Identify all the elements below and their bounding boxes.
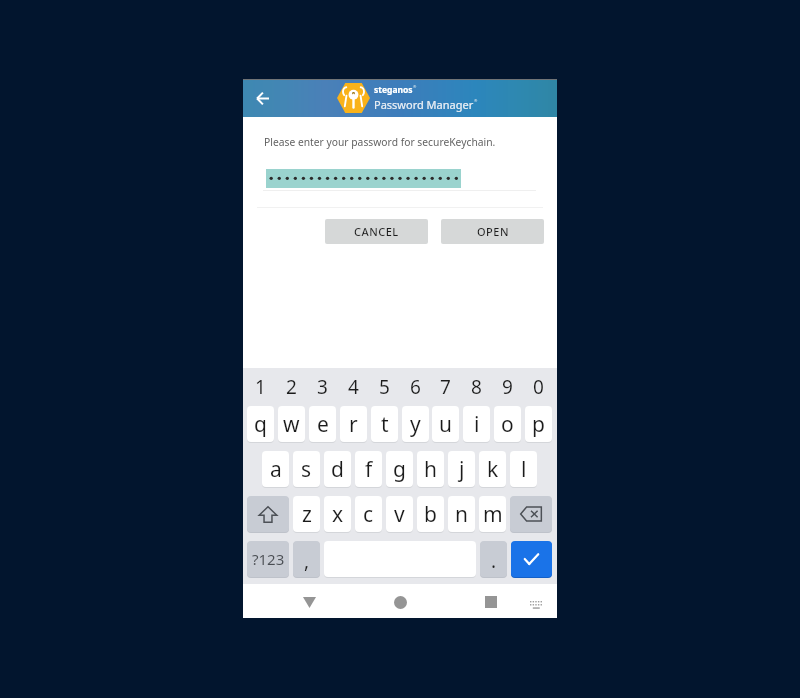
staticText: a: [270, 455, 282, 484]
staticText: m: [483, 500, 503, 529]
staticText: k: [487, 455, 499, 484]
button[interactable]: t: [371, 406, 398, 442]
staticText: OPEN: [477, 224, 509, 239]
staticText: ®: [413, 84, 417, 89]
staticText: j: [459, 455, 465, 484]
staticText: 9: [502, 374, 513, 400]
button[interactable]: c: [355, 496, 382, 532]
staticText: h: [424, 455, 437, 484]
button[interactable]: h: [417, 451, 444, 487]
staticText: c: [363, 500, 374, 529]
button[interactable]: Switch keyboard: [518, 588, 554, 622]
button[interactable]: l: [510, 451, 537, 487]
button[interactable]: Recents: [471, 585, 511, 619]
staticText: ,: [304, 548, 310, 574]
staticText: t: [381, 410, 389, 439]
button[interactable]: Enter: [511, 541, 552, 577]
staticText: Please enter your password for secureKey…: [264, 135, 496, 149]
staticText: q: [254, 410, 267, 439]
button[interactable]: r: [340, 406, 367, 442]
button[interactable]: 7: [432, 372, 459, 402]
button[interactable]: q: [247, 406, 274, 442]
staticText: i: [474, 410, 480, 439]
staticText: g: [393, 455, 406, 484]
button[interactable]: p: [525, 406, 552, 442]
button[interactable]: u: [432, 406, 459, 442]
button[interactable]: Backspace: [510, 496, 552, 532]
button[interactable]: x: [324, 496, 351, 532]
staticText: 2: [286, 374, 297, 400]
button[interactable]: 9: [494, 372, 521, 402]
button[interactable]: 3: [309, 372, 336, 402]
button[interactable]: o: [494, 406, 521, 442]
button[interactable]: Back: [289, 585, 329, 619]
staticText: 3: [317, 374, 328, 400]
staticText: d: [331, 455, 344, 484]
button[interactable]: b: [417, 496, 444, 532]
button[interactable]: d: [324, 451, 351, 487]
staticText: x: [332, 500, 344, 529]
staticText: y: [410, 410, 421, 439]
button[interactable]: ,: [293, 541, 320, 577]
staticText: .: [491, 548, 497, 574]
staticText: 6: [410, 374, 421, 400]
button[interactable]: OPEN: [441, 219, 544, 244]
button[interactable]: i: [463, 406, 490, 442]
button[interactable]: f: [355, 451, 382, 487]
staticText: ®: [474, 98, 478, 103]
button[interactable]: m: [479, 496, 506, 532]
staticText: 4: [348, 374, 359, 400]
staticText: 8: [471, 374, 482, 400]
staticText: e: [317, 410, 329, 439]
button[interactable]: ?123: [247, 541, 289, 577]
staticText: f: [365, 455, 373, 484]
button[interactable]: k: [479, 451, 506, 487]
button[interactable]: .: [480, 541, 507, 577]
staticText: u: [439, 410, 452, 439]
staticText: l: [521, 455, 527, 484]
staticText: 5: [379, 374, 390, 400]
button[interactable]: 5: [371, 372, 398, 402]
staticText: 1: [255, 374, 266, 400]
button[interactable]: w: [278, 406, 305, 442]
staticText: steganos: [374, 84, 413, 96]
button[interactable]: j: [448, 451, 475, 487]
staticText: 7: [440, 374, 451, 400]
button[interactable]: e: [309, 406, 336, 442]
button[interactable]: g: [386, 451, 413, 487]
button[interactable]: Shift: [247, 496, 289, 532]
staticText: s: [301, 455, 312, 484]
button[interactable]: 0: [525, 372, 552, 402]
button[interactable]: CANCEL: [325, 219, 428, 244]
staticText: b: [424, 500, 437, 529]
button[interactable]: 8: [463, 372, 490, 402]
button[interactable]: Password: [266, 169, 461, 188]
button[interactable]: n: [448, 496, 475, 532]
button[interactable]: y: [402, 406, 429, 442]
button[interactable]: 1: [247, 372, 274, 402]
button[interactable]: 6: [402, 372, 429, 402]
staticText: n: [455, 500, 468, 529]
button[interactable]: 2: [278, 372, 305, 402]
staticText: p: [532, 410, 545, 439]
staticText: z: [302, 500, 312, 529]
button[interactable]: z: [293, 496, 320, 532]
button[interactable]: Home: [380, 585, 420, 619]
button[interactable]: a: [262, 451, 289, 487]
staticText: CANCEL: [354, 224, 399, 239]
staticText: v: [394, 500, 405, 529]
button[interactable]: s: [293, 451, 320, 487]
staticText: Password Manager: [374, 97, 474, 112]
button[interactable]: Back: [243, 79, 281, 117]
staticText: r: [349, 410, 358, 439]
staticText: 0: [533, 374, 544, 400]
button[interactable]: v: [386, 496, 413, 532]
button[interactable]: 4: [340, 372, 367, 402]
staticText: ?123: [252, 549, 285, 569]
staticText: w: [283, 410, 300, 439]
staticText: o: [501, 410, 514, 439]
